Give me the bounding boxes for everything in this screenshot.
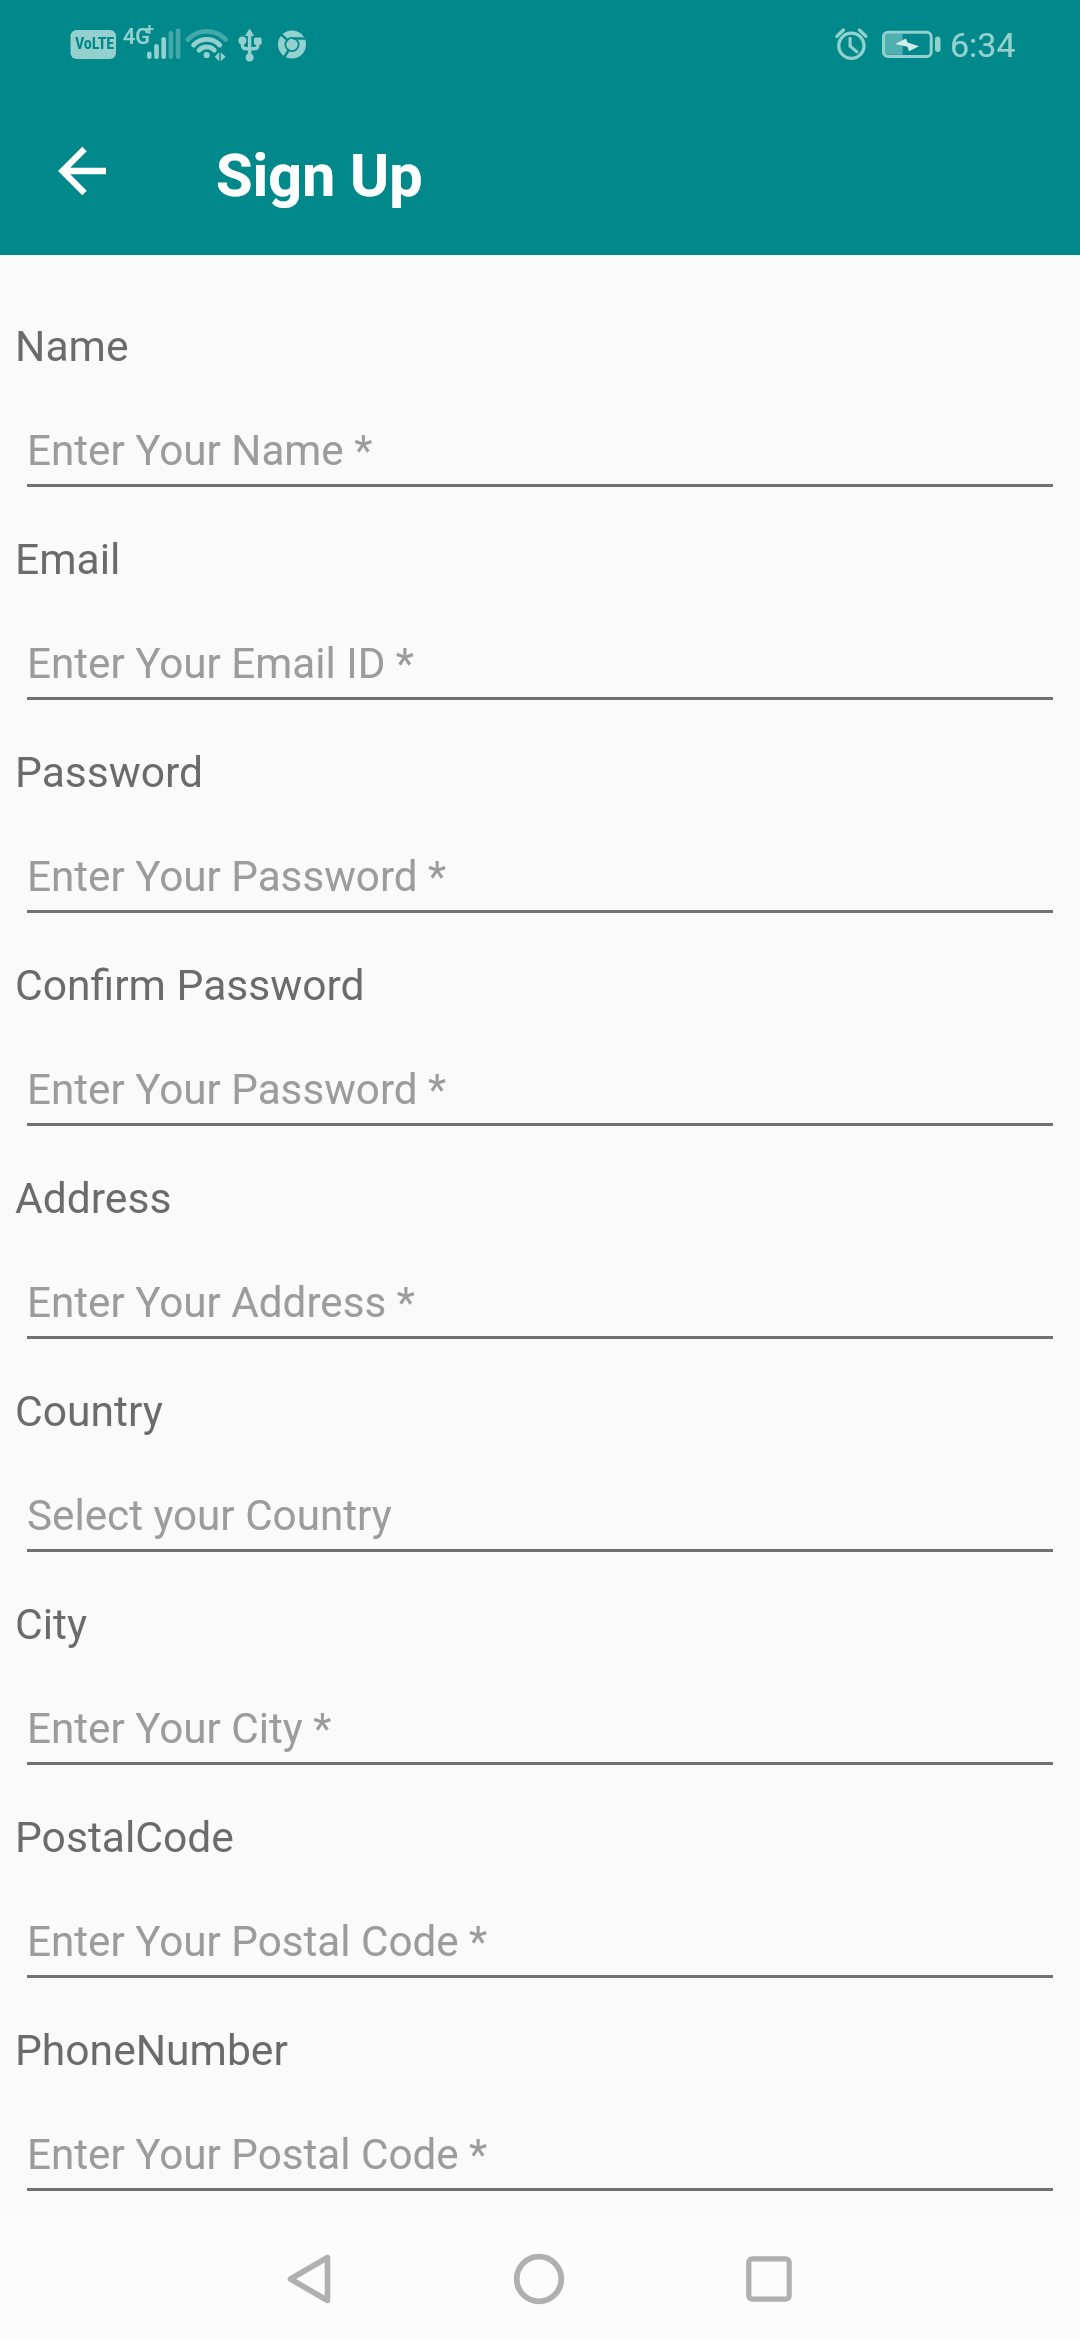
button[interactable]: Recent apps	[709, 2219, 829, 2339]
button[interactable]: Enter Your Postal Code *	[0, 1871, 1080, 1978]
staticText: +	[145, 20, 154, 39]
button[interactable]: Select your Country	[0, 1445, 1080, 1552]
button[interactable]: Enter Your Name *	[0, 380, 1080, 487]
staticText: Enter Your Password *	[27, 852, 447, 901]
button[interactable]: Back	[249, 2219, 369, 2339]
staticText: VoLTE	[75, 34, 115, 53]
staticText: PhoneNumber	[15, 2025, 288, 2075]
staticText: Enter Your Address *	[27, 1278, 415, 1327]
staticText: Name	[15, 321, 129, 371]
button[interactable]: Navigate back	[41, 130, 123, 212]
staticText: Confirm Password	[15, 960, 365, 1010]
staticText: PostalCode	[15, 1812, 234, 1862]
staticText: Select your Country	[27, 1491, 392, 1540]
staticText: 4G	[123, 24, 150, 49]
button[interactable]: Enter Your Postal Code *	[0, 2084, 1080, 2191]
button[interactable]: Enter Your Email ID *	[0, 593, 1080, 700]
staticText: Country	[15, 1386, 163, 1436]
button[interactable]: Enter Your Password *	[0, 1019, 1080, 1126]
staticText: Enter Your Name *	[27, 426, 373, 475]
button[interactable]: Enter Your Password *	[0, 806, 1080, 913]
staticText: Password	[15, 747, 204, 797]
staticText: Enter Your Email ID *	[27, 639, 414, 688]
staticText: Enter Your Password *	[27, 1065, 447, 1114]
staticText: 6:34	[950, 25, 1016, 65]
staticText: Address	[15, 1173, 172, 1223]
staticText: Enter Your Postal Code *	[27, 2130, 488, 2179]
button[interactable]: Enter Your City *	[0, 1658, 1080, 1765]
button[interactable]: Enter Your Address *	[0, 1232, 1080, 1339]
staticText: Sign Up	[216, 141, 423, 210]
staticText: Enter Your Postal Code *	[27, 1917, 488, 1966]
button[interactable]: Home	[479, 2219, 599, 2339]
staticText: Email	[15, 534, 121, 584]
staticText: City	[15, 1599, 88, 1649]
staticText: Enter Your City *	[27, 1704, 332, 1753]
